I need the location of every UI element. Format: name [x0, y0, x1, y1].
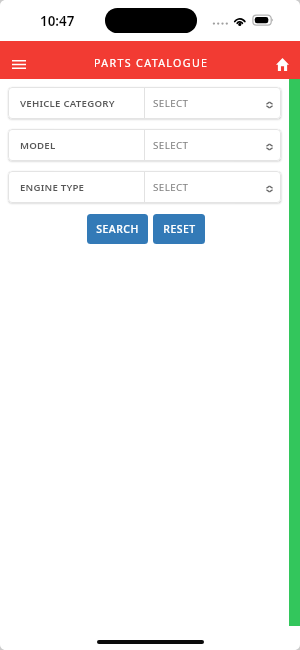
button[interactable]: MODEL: [8, 129, 281, 161]
staticText: SELECT: [153, 139, 189, 152]
button[interactable]: Home: [267, 45, 297, 75]
button[interactable]: Open navigation menu: [0, 41, 38, 79]
button[interactable]: RESET: [153, 214, 205, 244]
staticText: MODEL: [20, 139, 56, 152]
staticText: SELECT: [153, 97, 189, 110]
button[interactable]: VEHICLE CATEGORY: [8, 87, 281, 119]
staticText: VEHICLE CATEGORY: [20, 97, 115, 110]
staticText: ENGINE TYPE: [20, 181, 85, 194]
button[interactable]: SEARCH: [87, 214, 148, 244]
button[interactable]: ENGINE TYPE: [8, 171, 281, 203]
staticText: PARTS CATALOGUE: [94, 56, 209, 71]
staticText: SELECT: [153, 181, 189, 194]
staticText: RESET: [163, 222, 196, 236]
staticText: 10:47: [40, 12, 75, 30]
staticText: SEARCH: [96, 222, 139, 236]
